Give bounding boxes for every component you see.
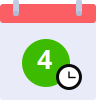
staticText: 4 bbox=[37, 41, 52, 76]
button[interactable]: Scheduled calendar event bbox=[0, 0, 96, 100]
